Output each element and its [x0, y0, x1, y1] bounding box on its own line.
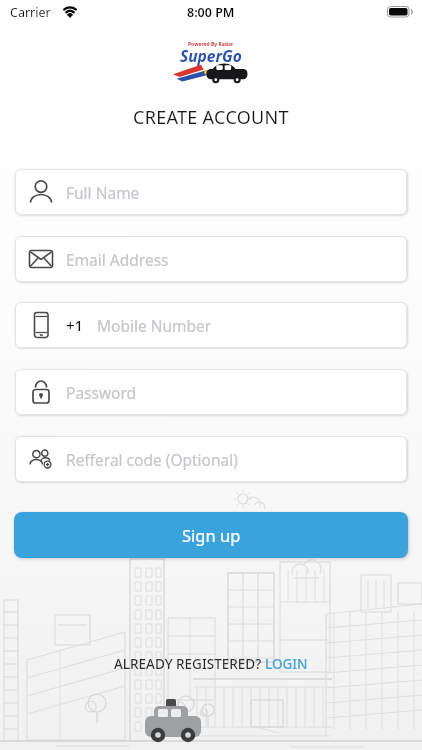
staticText: Sign up: [182, 524, 241, 546]
staticText: ALREADY REGISTERED?: [114, 655, 265, 673]
staticText: CREATE ACCOUNT: [133, 105, 289, 130]
button[interactable]: Email Address: [15, 236, 407, 282]
staticText: Password: [66, 382, 137, 403]
button[interactable]: Refferal code (Optional): [15, 436, 407, 482]
staticText: SuperGo: [180, 45, 242, 66]
button[interactable]: +1: [15, 302, 407, 348]
button[interactable]: LOGIN: [265, 655, 308, 673]
staticText: Powered By Radar: [188, 41, 234, 48]
staticText: Refferal code (Optional): [66, 449, 238, 470]
staticText: Full Name: [66, 182, 140, 203]
staticText: Email Address: [66, 249, 169, 270]
button[interactable]: Password: [15, 369, 407, 415]
staticText: LOGIN: [265, 655, 308, 673]
staticText: Carrier: [10, 4, 51, 21]
staticText: 8:00 PM: [187, 4, 235, 21]
staticText: +1: [66, 315, 84, 335]
button[interactable]: Full Name: [15, 169, 407, 215]
staticText: Mobile Number: [97, 315, 212, 336]
button[interactable]: Sign up: [14, 512, 408, 558]
